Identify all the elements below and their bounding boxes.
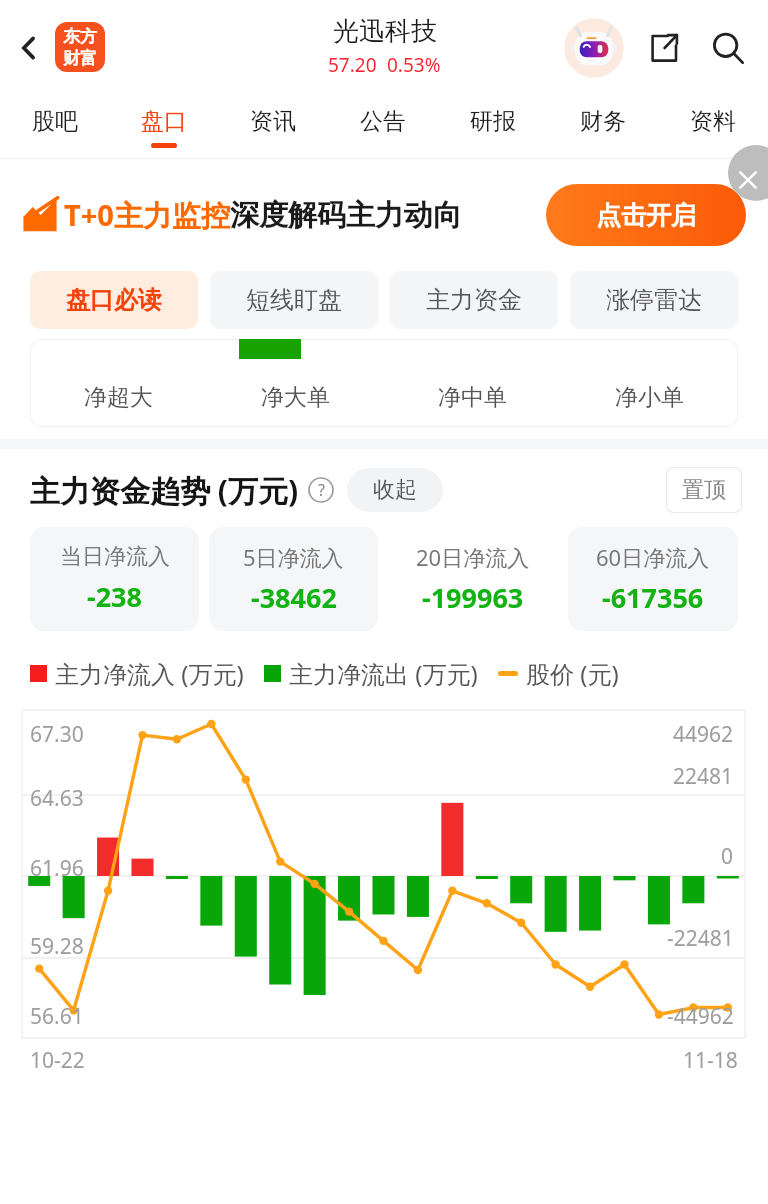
staticText: 57.20	[328, 52, 377, 78]
button[interactable]: 研报	[438, 96, 548, 158]
staticText: 股吧	[32, 107, 78, 136]
staticText: 67.30	[30, 720, 84, 749]
button[interactable]: 点击开启	[546, 184, 746, 246]
staticText: 置顶	[682, 476, 726, 504]
staticText: 资料	[690, 107, 736, 136]
staticText: 64.63	[30, 784, 84, 813]
staticText: 东方	[63, 26, 97, 47]
button[interactable]: 净超大	[30, 339, 738, 427]
button[interactable]: 5日净流入	[209, 527, 378, 631]
button[interactable]: 盘口	[109, 96, 218, 158]
staticText: 主力资金趋势 (万元)	[30, 470, 299, 511]
staticText: 收起	[373, 476, 417, 504]
button[interactable]: AI助手	[563, 17, 625, 79]
staticText: 当日净流入	[60, 543, 170, 571]
staticText: 0.53%	[387, 52, 441, 78]
button[interactable]: 公告	[328, 96, 438, 158]
button[interactable]: 主力资金	[390, 271, 558, 329]
staticText: -22481	[667, 924, 734, 953]
button[interactable]: 说明	[307, 476, 335, 504]
staticText: 公告	[360, 107, 406, 136]
staticText: ?	[318, 479, 325, 501]
staticText: 22481	[673, 762, 734, 791]
staticText: 涨停雷达	[606, 285, 702, 315]
staticText: 短线盯盘	[246, 285, 342, 315]
staticText: 净大单	[261, 383, 330, 412]
button[interactable]: 短线盯盘	[210, 271, 378, 329]
staticText: T+0主力监控	[64, 195, 230, 235]
button[interactable]: 涨停雷达	[570, 271, 738, 329]
staticText: 0	[721, 842, 734, 871]
button[interactable]: 盘口必读	[30, 271, 198, 329]
staticText: -44962	[667, 1002, 734, 1031]
staticText: -617356	[602, 579, 704, 616]
staticText: 财务	[580, 107, 626, 136]
staticText: 44962	[673, 720, 734, 749]
staticText: 5日净流入	[243, 542, 344, 572]
button[interactable]: 财务	[548, 96, 658, 158]
staticText: 20日净流入	[416, 542, 530, 572]
staticText: 主力净流出 (万元)	[289, 657, 478, 690]
staticText: -199963	[422, 579, 524, 616]
staticText: 59.28	[30, 932, 84, 961]
staticText: 净小单	[615, 383, 684, 412]
button[interactable]: 股吧	[0, 96, 109, 158]
staticText: -238	[87, 578, 142, 615]
staticText: 盘口必读	[66, 285, 162, 315]
staticText: 主力净流入 (万元)	[55, 657, 244, 690]
staticText: 股价 (元)	[526, 657, 619, 690]
button[interactable]: 资料	[658, 96, 768, 158]
staticText: 盘口	[141, 107, 187, 136]
staticText: 60日净流入	[596, 542, 710, 572]
staticText: 61.96	[30, 854, 84, 883]
staticText: 56.61	[30, 1002, 84, 1031]
button[interactable]: 60日净流入	[568, 527, 738, 631]
button[interactable]: 收起	[347, 468, 443, 512]
button[interactable]: Back	[6, 25, 52, 71]
staticText: 光迅科技	[333, 15, 437, 48]
button[interactable]: 置顶	[666, 467, 742, 513]
staticText: 净超大	[84, 383, 153, 412]
staticText: 深度解码主力动向	[230, 197, 462, 234]
staticText: 资讯	[250, 107, 296, 136]
staticText: -38462	[251, 579, 337, 616]
staticText: 财富	[63, 48, 97, 69]
staticText: 研报	[470, 107, 516, 136]
button[interactable]: Close	[728, 145, 768, 201]
button[interactable]: 资讯	[218, 96, 328, 158]
button[interactable]: 20日净流入	[388, 527, 558, 631]
staticText: 10-22	[30, 1046, 85, 1075]
button[interactable]: 东方财富	[55, 22, 105, 72]
button[interactable]: 当日净流入	[30, 527, 199, 631]
staticText: 主力资金	[426, 285, 522, 315]
staticText: 净中单	[438, 383, 507, 412]
staticText: 点击开启	[596, 200, 696, 231]
staticText: 11-18	[683, 1046, 738, 1075]
button[interactable]: Search	[700, 20, 756, 76]
button[interactable]: Share	[638, 22, 690, 74]
